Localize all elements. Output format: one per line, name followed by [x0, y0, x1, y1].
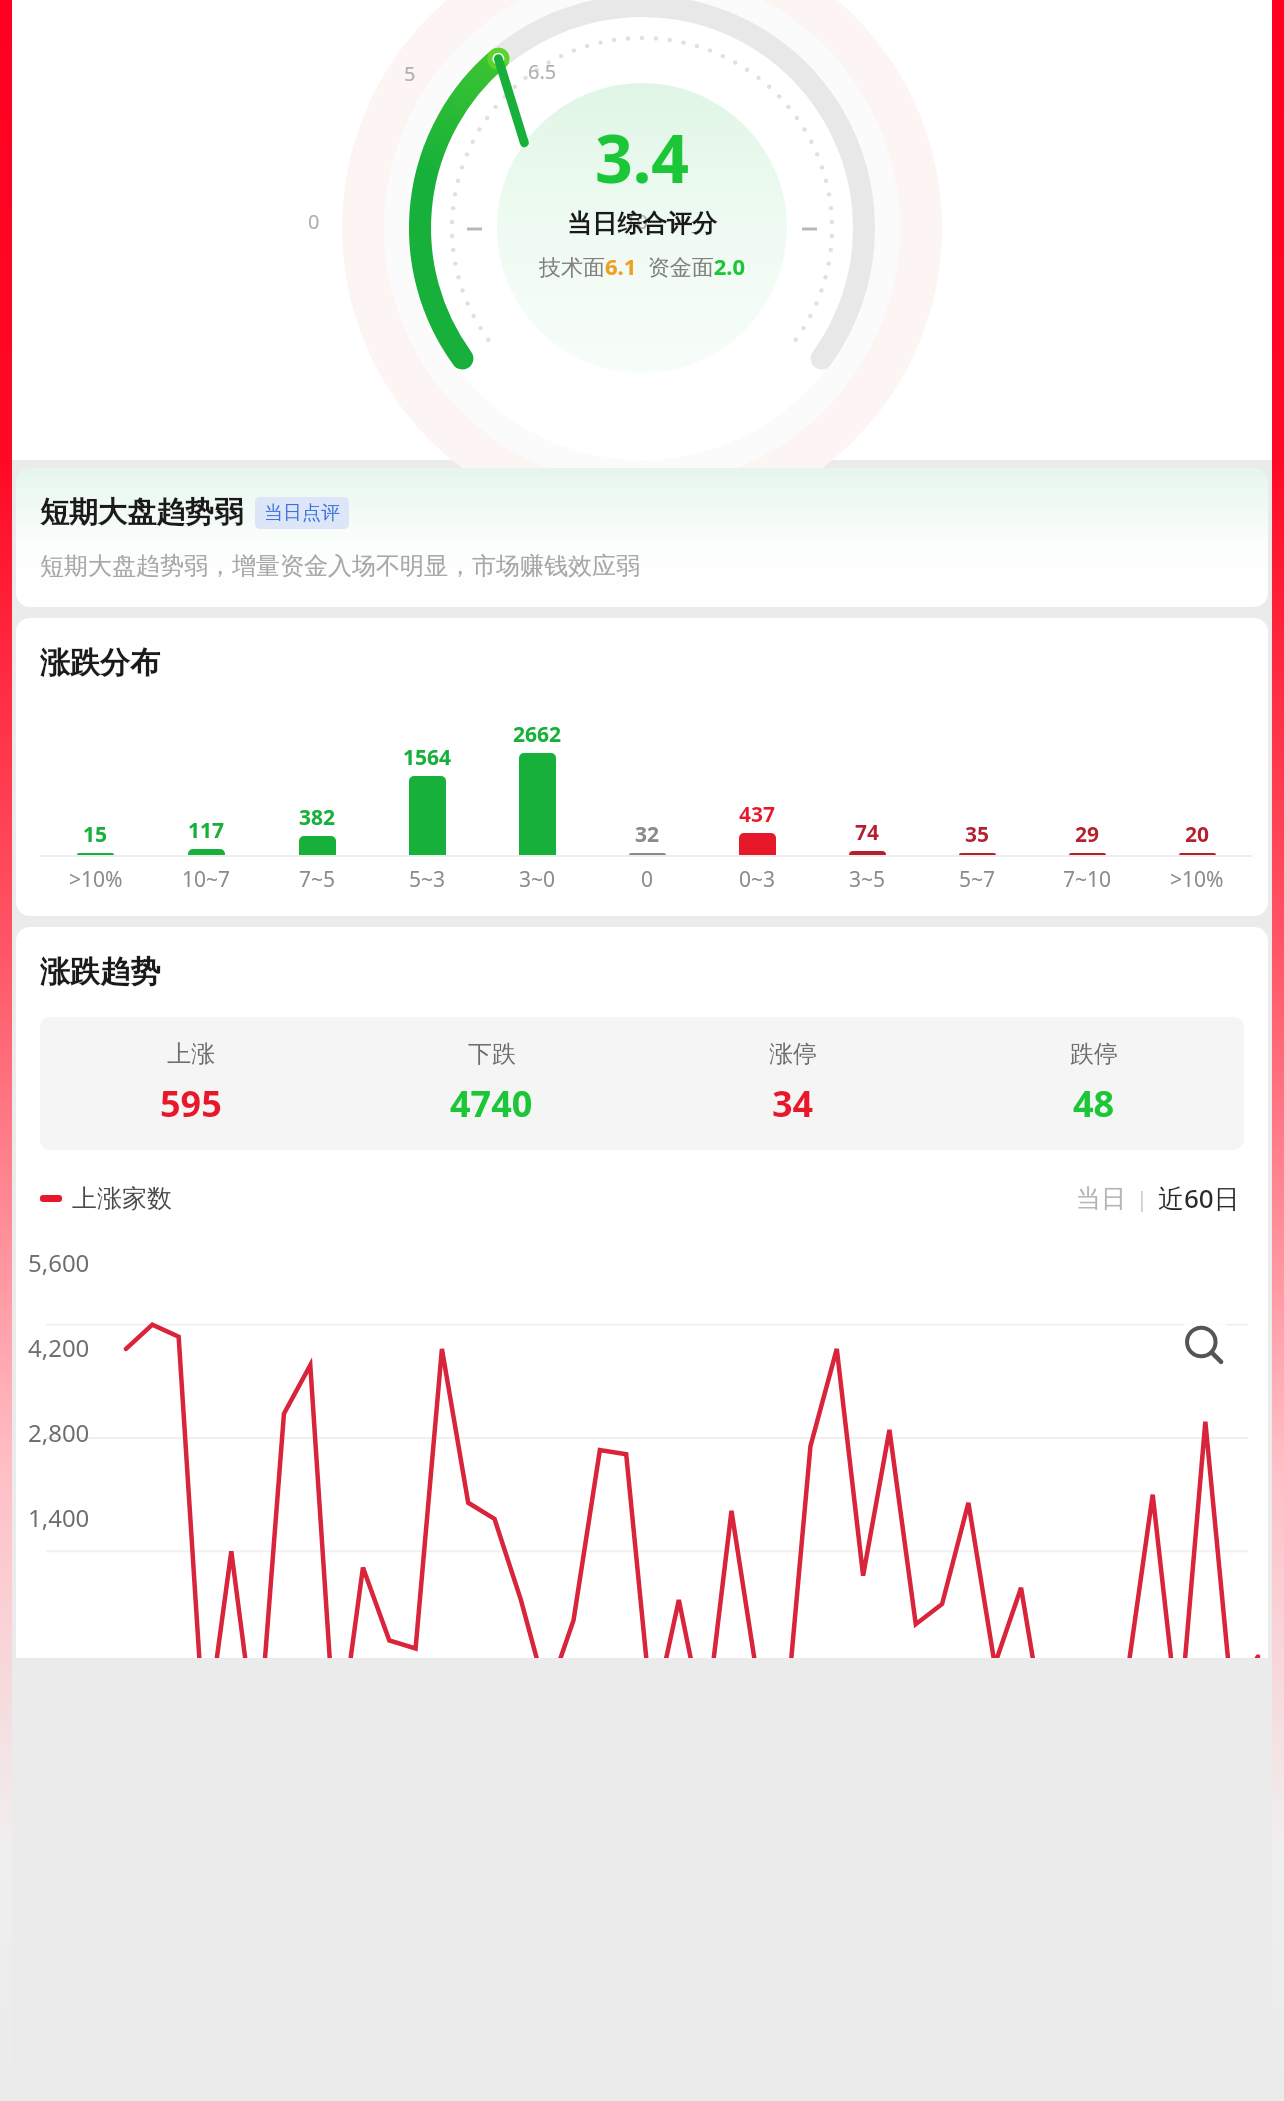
button[interactable]: 涨跌分布: [16, 618, 1268, 916]
staticText: 跌停: [1070, 1039, 1118, 1069]
staticText: 35: [965, 820, 990, 849]
staticText: 74: [855, 818, 880, 847]
button[interactable]: 当日: [1072, 1183, 1130, 1214]
staticText: 3.4: [595, 112, 690, 202]
staticText: 涨跌趋势: [40, 953, 160, 991]
staticText: 382: [299, 803, 336, 832]
staticText: 1564: [403, 743, 452, 772]
staticText: 4740: [450, 1079, 533, 1128]
staticText: 3~0: [519, 865, 556, 894]
button[interactable]: 近60日: [1154, 1180, 1244, 1216]
staticText: 上涨: [167, 1039, 215, 1069]
staticText: |: [1130, 1183, 1154, 1213]
staticText: 涨跌分布: [40, 644, 160, 682]
staticText: 当日综合评分: [567, 208, 717, 239]
staticText: 34: [772, 1079, 814, 1128]
staticText: 5~3: [409, 865, 446, 894]
staticText: 短期大盘趋势弱: [40, 494, 243, 531]
staticText: 7~5: [299, 865, 336, 894]
staticText: 5,600: [28, 1246, 90, 1279]
staticText: 20: [1185, 820, 1210, 849]
staticText: 上涨家数: [72, 1183, 172, 1214]
staticText: 4,200: [28, 1331, 90, 1364]
staticText: 1,400: [28, 1501, 90, 1534]
staticText: 当日点评: [264, 501, 340, 525]
staticText: 涨停: [769, 1039, 817, 1069]
staticText: >10%: [1170, 865, 1224, 894]
staticText: 当日: [1076, 1183, 1126, 1214]
staticText: 近60日: [1158, 1180, 1240, 1216]
staticText: 3~5: [849, 865, 886, 894]
staticText: 48: [1073, 1079, 1115, 1128]
button[interactable]: 短期大盘趋势弱: [16, 468, 1268, 607]
staticText: 117: [188, 816, 225, 845]
staticText: 0~3: [739, 865, 776, 894]
staticText: 下跌: [468, 1039, 516, 1069]
staticText: 2,800: [28, 1416, 90, 1449]
staticText: 0: [308, 208, 320, 235]
staticText: 6.5: [528, 58, 557, 85]
button[interactable]: Zoom chart: [1174, 1316, 1236, 1378]
staticText: 短期大盘趋势弱，增量资金入场不明显，市场赚钱效应弱: [40, 551, 640, 581]
staticText: 32: [635, 820, 660, 849]
staticText: 15: [83, 820, 108, 849]
staticText: 29: [1075, 820, 1100, 849]
staticText: 2662: [513, 720, 562, 749]
staticText: >10%: [69, 865, 123, 894]
staticText: 595: [160, 1079, 222, 1128]
staticText: 5~7: [959, 865, 996, 894]
button[interactable]: 上涨: [40, 1017, 1244, 1150]
staticText: 10~7: [182, 865, 231, 894]
staticText: 技术面6.1 资金面2.0: [539, 251, 746, 281]
staticText: 7~10: [1063, 865, 1112, 894]
staticText: 5: [404, 60, 416, 87]
staticText: 10: [625, 208, 648, 235]
staticText: 437: [739, 800, 776, 829]
staticText: 0: [641, 865, 654, 894]
